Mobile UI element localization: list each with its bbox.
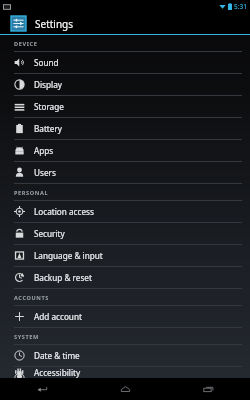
button[interactable]: Apps [0,140,250,162]
button[interactable]: Language & input [0,245,250,267]
button[interactable]: Back [0,378,84,400]
staticText: DEVICE [14,40,38,48]
staticText: Sound [34,57,59,68]
staticText: ACCOUNTS [14,294,50,302]
button[interactable]: Backup & reset [0,267,250,289]
button[interactable]: Add account [0,306,250,328]
staticText: SYSTEM [14,333,39,341]
staticText: Users [34,167,56,178]
button[interactable]: Security [0,223,250,245]
staticText: Add account [34,311,82,322]
button[interactable]: Accessibility [0,367,250,378]
staticText: Settings [35,17,74,31]
button[interactable]: Location access [0,201,250,223]
staticText: Security [34,228,65,239]
button[interactable]: Date & time [0,345,250,367]
staticText: PERSONAL [14,189,49,197]
button[interactable]: Users [0,162,250,184]
button[interactable]: Recent apps [167,378,250,400]
staticText: 5:31 [234,2,247,11]
button[interactable]: Storage [0,96,250,118]
staticText: Battery [34,123,63,134]
staticText: Location access [34,206,94,217]
staticText: Backup & reset [34,272,92,283]
button[interactable]: Battery [0,118,250,140]
button[interactable]: Settings [0,13,250,34]
button[interactable]: Home [84,378,167,400]
staticText: Accessibility [34,367,81,378]
staticText: Language & input [34,250,103,261]
staticText: Apps [34,145,54,156]
button[interactable]: Display [0,74,250,96]
staticText: Storage [34,101,64,112]
button[interactable]: Sound [0,52,250,74]
staticText: Date & time [34,350,80,361]
staticText: Display [34,79,62,90]
